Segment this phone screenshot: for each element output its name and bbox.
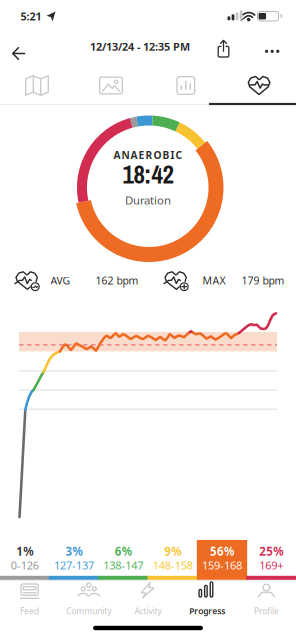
- button[interactable]: Zone 5: 56%, 159-168: [197, 540, 247, 580]
- staticText: MAX: [202, 273, 225, 288]
- button[interactable]: Activity: [118, 581, 178, 619]
- staticText: 1%: [16, 543, 33, 559]
- staticText: Activity: [134, 605, 161, 617]
- button[interactable]: Feed: [0, 581, 59, 619]
- staticText: A N A E R O B I C: [113, 148, 182, 162]
- button[interactable]: Profile: [237, 581, 296, 619]
- button[interactable]: Zone 3: 6%, 138-147: [99, 540, 148, 580]
- button[interactable]: Photos: [74, 62, 148, 105]
- staticText: Duration: [125, 192, 171, 208]
- button[interactable]: Stats: [149, 62, 223, 105]
- button[interactable]: More options: [257, 38, 287, 64]
- staticText: 56%: [210, 543, 234, 559]
- button[interactable]: Zone 4: 9%, 148-158: [148, 540, 197, 580]
- button[interactable]: Progress: [178, 581, 237, 619]
- staticText: Profile: [254, 605, 279, 617]
- staticText: Progress: [189, 605, 225, 617]
- staticText: 18:42: [122, 158, 173, 191]
- staticText: 138-147: [103, 558, 143, 573]
- staticText: 169+: [259, 558, 283, 573]
- staticText: 25%: [259, 543, 283, 559]
- button[interactable]: Zone 2: 3%, 127-137: [49, 540, 99, 580]
- staticText: 127-137: [54, 558, 94, 573]
- staticText: 0-126: [11, 558, 39, 573]
- staticText: 9%: [164, 543, 181, 559]
- staticText: 148-158: [153, 558, 193, 573]
- staticText: Feed: [20, 605, 39, 617]
- button[interactable]: Back: [3, 36, 35, 70]
- staticText: 159-168: [202, 558, 242, 573]
- button[interactable]: Map: [0, 62, 74, 105]
- button[interactable]: Heart rate: [222, 62, 296, 105]
- staticText: 3%: [65, 543, 82, 559]
- staticText: 6%: [115, 543, 132, 559]
- button[interactable]: Zone 1: 1%, 0-126: [0, 540, 49, 580]
- staticText: 179 bpm: [241, 273, 284, 288]
- button[interactable]: Share: [208, 34, 238, 64]
- staticText: 12/13/24 - 12:35 PM: [90, 39, 190, 54]
- button[interactable]: Community: [59, 581, 118, 619]
- staticText: AVG: [50, 273, 70, 288]
- staticText: 5:21: [20, 9, 41, 24]
- staticText: Community: [66, 605, 111, 617]
- staticText: 162 bpm: [95, 273, 138, 288]
- button[interactable]: Zone 6: 25%, 169+: [247, 540, 296, 580]
